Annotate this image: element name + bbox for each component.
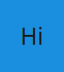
staticText: Hi <box>20 21 43 51</box>
